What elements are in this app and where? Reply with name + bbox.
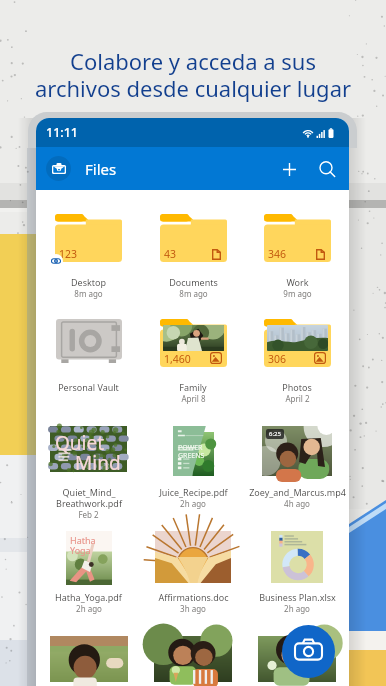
button[interactable]	[245, 610, 349, 686]
button[interactable]: Account	[46, 156, 71, 181]
button[interactable]: Personal Vault	[36, 295, 141, 400]
staticText: 8m ago	[179, 288, 208, 299]
staticText: Documents	[169, 276, 218, 288]
staticText: POWER GREENS	[178, 443, 205, 460]
button[interactable]: POWER GREENS	[141, 400, 245, 505]
button[interactable]: 43	[141, 190, 245, 295]
staticText: Photos	[282, 381, 312, 393]
button[interactable]: 306	[245, 295, 349, 400]
staticText: 43	[164, 247, 177, 261]
staticText: Feb 2	[78, 509, 99, 520]
staticText: 3h ago	[180, 603, 206, 614]
staticText: Juice_Recipe.pdf	[159, 486, 228, 498]
staticText: Colabore y acceda a sus archivos desde c…	[0, 46, 386, 103]
staticText: Files	[85, 159, 117, 179]
staticText: Family	[179, 381, 207, 393]
button[interactable]: 6:25	[245, 400, 349, 505]
staticText: 11:11	[46, 124, 79, 141]
staticText: Hatha_Yoga.pdf	[55, 591, 122, 603]
button[interactable]: Business Plan.xlsx	[245, 505, 349, 610]
button[interactable]: Affirmations.doc	[141, 505, 245, 610]
staticText: 123	[59, 247, 78, 261]
staticText: 2h ago	[180, 498, 206, 509]
button[interactable]: 346	[245, 190, 349, 295]
staticText: 306	[268, 352, 287, 366]
button[interactable]: Hatha Yoga	[36, 505, 141, 610]
button[interactable]: Add	[270, 150, 308, 188]
staticText: 9m ago	[283, 288, 312, 299]
staticText: 8m ago	[74, 288, 103, 299]
staticText: 1,460	[164, 352, 191, 366]
staticText: Hatha Yoga	[70, 534, 96, 556]
staticText: Zoey_and_Marcus.mp4	[249, 486, 346, 498]
button[interactable]: Camera	[282, 625, 335, 678]
button[interactable]: Search	[308, 150, 346, 188]
button[interactable]	[36, 610, 141, 686]
button[interactable]: 123	[36, 190, 141, 295]
staticText: Quiet	[55, 430, 105, 456]
staticText: Affirmations.doc	[158, 591, 229, 603]
staticText: April 2	[285, 393, 310, 404]
button[interactable]: Quiet	[36, 400, 141, 505]
staticText: Business Plan.xlsx	[259, 591, 336, 603]
staticText: Personal Vault	[58, 381, 119, 393]
staticText: 2h ago	[76, 603, 102, 614]
staticText: Desktop	[71, 276, 106, 288]
staticText: Quiet_Mind_ Breathwork.pdf	[56, 486, 122, 509]
button[interactable]: 1,460	[141, 295, 245, 400]
staticText: 6:25	[269, 430, 281, 438]
staticText: 2h ago	[284, 603, 310, 614]
staticText: 4h ago	[284, 498, 310, 509]
staticText: April 8	[181, 393, 206, 404]
staticText: 346	[268, 247, 287, 261]
staticText: Work	[286, 276, 309, 288]
staticText: Mind	[75, 450, 121, 476]
button[interactable]	[141, 610, 245, 686]
